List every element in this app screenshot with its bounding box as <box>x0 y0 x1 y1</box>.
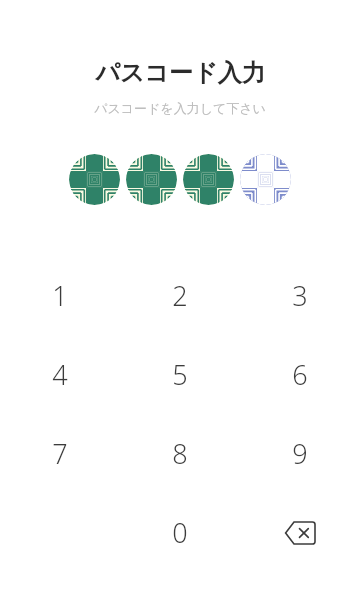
staticText: 2 <box>172 277 188 314</box>
button[interactable]: 6 <box>240 335 360 414</box>
button[interactable]: 8 <box>120 414 240 493</box>
staticText: 7 <box>52 435 68 472</box>
button[interactable]: 9 <box>240 414 360 493</box>
button[interactable]: 5 <box>120 335 240 414</box>
button[interactable]: 1 <box>0 256 120 335</box>
button[interactable]: 4 <box>0 335 120 414</box>
staticText: 3 <box>292 277 308 314</box>
staticText: パスコード入力 <box>95 58 266 88</box>
staticText: 6 <box>292 356 308 393</box>
button[interactable]: 0 <box>120 493 240 572</box>
staticText: 0 <box>172 514 188 551</box>
button[interactable]: 2 <box>120 256 240 335</box>
staticText: パスコードを入力して下さい <box>94 100 266 116</box>
button[interactable]: 3 <box>240 256 360 335</box>
staticText: 8 <box>172 435 188 472</box>
button[interactable]: Backspace <box>240 493 360 572</box>
button[interactable]: 7 <box>0 414 120 493</box>
staticText: 9 <box>292 435 308 472</box>
staticText: 1 <box>52 277 68 314</box>
staticText: 4 <box>52 356 68 393</box>
staticText: 5 <box>172 356 188 393</box>
